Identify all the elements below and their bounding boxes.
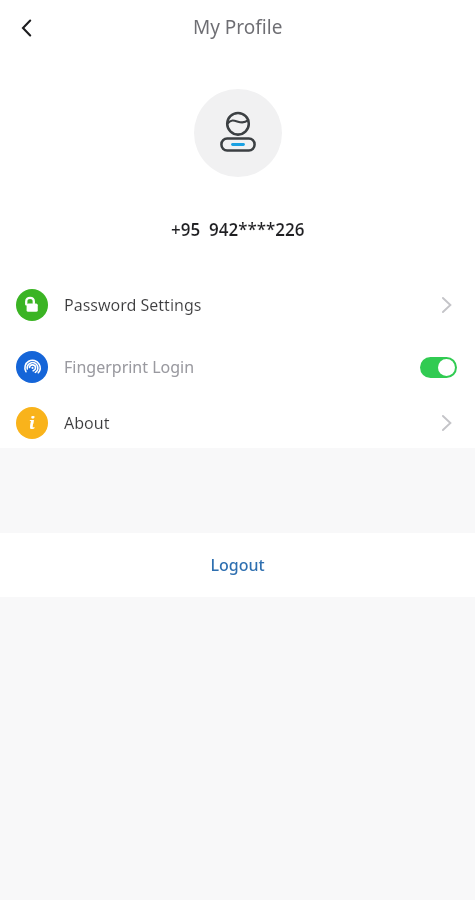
staticText: +95 942****226 [171, 218, 305, 241]
staticText: Fingerprint Login [64, 356, 195, 378]
button[interactable]: Password Settings [0, 274, 475, 336]
staticText: Password Settings [64, 294, 202, 316]
staticText: My Profile [193, 14, 283, 40]
button[interactable]: Logout [0, 533, 475, 597]
staticText: Logout [210, 554, 265, 576]
button[interactable]: Back [8, 9, 46, 47]
staticText: About [64, 412, 110, 434]
button[interactable]: Fingerprint Login [0, 336, 475, 398]
button[interactable]: Fingerprint Login toggle [420, 357, 457, 378]
staticText: i [29, 412, 35, 434]
button[interactable]: i [0, 398, 475, 448]
